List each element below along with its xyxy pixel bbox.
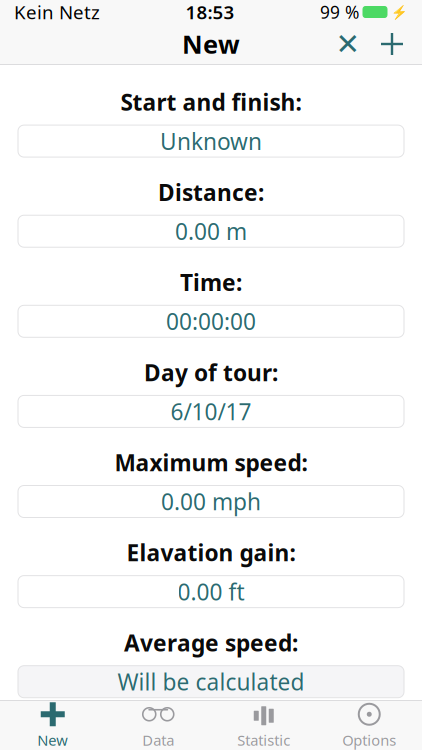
staticText: Distance:	[158, 177, 264, 207]
staticText: 00:00:00	[166, 306, 256, 336]
button[interactable]: 0.00 mph	[18, 485, 404, 517]
button[interactable]: 0.00 ft	[18, 576, 404, 608]
staticText: Unknown	[160, 126, 262, 156]
button[interactable]: Unknown	[18, 125, 404, 157]
button[interactable]: Close	[326, 24, 370, 64]
staticText: New	[37, 730, 68, 750]
staticText: Time:	[180, 267, 242, 297]
staticText: Average speed:	[124, 628, 298, 658]
staticText: Statistic	[237, 730, 290, 750]
staticText: Options	[342, 730, 396, 750]
staticText: Start and finish:	[120, 87, 301, 117]
button[interactable]: Will be calculated	[18, 666, 404, 698]
staticText: ✕	[335, 27, 360, 61]
staticText: Maximum speed:	[114, 447, 307, 477]
button[interactable]: New	[0, 701, 105, 750]
staticText: Data	[142, 730, 174, 750]
button[interactable]: Options	[316, 701, 422, 750]
staticText: 99 %	[320, 0, 359, 23]
staticText: Elavation gain:	[126, 537, 295, 568]
staticText: ⚡	[391, 4, 408, 20]
button[interactable]: Statistic	[211, 701, 316, 750]
staticText: Day of tour:	[144, 357, 278, 387]
button[interactable]: Data	[105, 701, 211, 750]
staticText: 0.00 ft	[177, 577, 244, 607]
staticText: Kein Netz	[14, 0, 100, 24]
button[interactable]: 00:00:00	[18, 305, 404, 337]
staticText: 18:53	[185, 0, 234, 24]
button[interactable]: 6/10/17	[18, 395, 404, 427]
staticText: 6/10/17	[170, 396, 251, 426]
staticText: Will be calculated	[117, 667, 304, 697]
staticText: 0.00 m	[175, 216, 247, 246]
staticText: 0.00 mph	[161, 486, 261, 517]
button[interactable]: Add	[370, 24, 414, 64]
staticText: New	[182, 27, 240, 61]
button[interactable]: 0.00 m	[18, 215, 404, 247]
